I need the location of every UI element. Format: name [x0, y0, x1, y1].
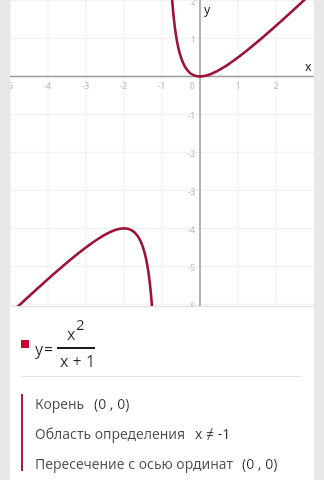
staticText: y	[35, 338, 44, 360]
staticText: x ≠ -1	[195, 424, 231, 443]
staticText: Корень	[35, 394, 85, 413]
staticText: Область определения	[35, 424, 186, 443]
staticText: 1	[236, 80, 241, 91]
other: Graph of y equals x squared over x plus …	[10, 0, 314, 306]
staticText: -3	[188, 186, 196, 197]
button[interactable]: Корень	[35, 388, 314, 418]
staticText: -2	[188, 148, 196, 159]
staticText: -6	[188, 300, 196, 306]
staticText: x + 1	[60, 350, 96, 372]
staticText: 2	[191, 0, 196, 7]
staticText: =	[44, 338, 54, 360]
staticText: -5	[10, 80, 14, 91]
staticText: 1	[191, 34, 196, 45]
button[interactable]: y	[10, 307, 314, 376]
staticText: (0 , 0)	[94, 394, 130, 413]
staticText: y	[204, 1, 211, 17]
staticText: -3	[82, 80, 90, 91]
staticText: -5	[188, 262, 196, 273]
staticText: 0	[190, 80, 195, 91]
staticText: 2	[76, 314, 85, 334]
staticText: -1	[158, 80, 166, 91]
staticText: (0 , 0)	[242, 454, 278, 473]
button[interactable]: Пересечение с осью ординат	[35, 448, 314, 478]
staticText: x	[305, 58, 312, 74]
staticText: -4	[188, 224, 196, 235]
staticText: x	[67, 323, 76, 345]
button[interactable]: Область определения	[35, 418, 314, 448]
staticText: -2	[120, 80, 128, 91]
staticText: -1	[188, 110, 196, 121]
staticText: -4	[44, 80, 52, 91]
staticText: 2	[274, 80, 279, 91]
staticText: Пересечение с осью ординат	[35, 454, 233, 473]
